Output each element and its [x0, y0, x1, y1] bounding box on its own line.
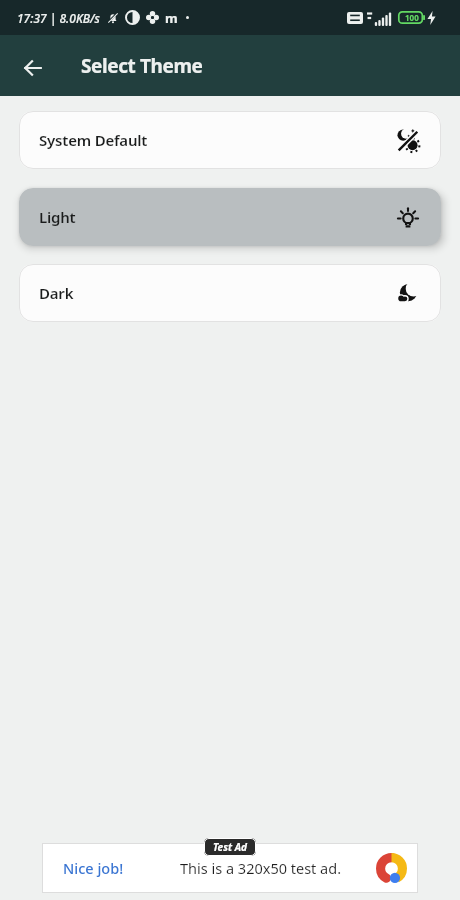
staticText: Test Ad [213, 840, 247, 854]
button[interactable]: System Default [19, 111, 441, 169]
staticText: 100 [405, 12, 419, 23]
staticText: Light [39, 207, 76, 227]
staticText: This is a 320x50 test ad. [180, 858, 342, 878]
button[interactable]: Nice job! [42, 843, 418, 893]
staticText: Dark [39, 283, 74, 303]
staticText: Nice job! [63, 858, 124, 878]
staticText: Select Theme [81, 53, 203, 79]
staticText: m [165, 9, 178, 27]
staticText: 17:37 | 8.0KB/s [17, 10, 100, 26]
button[interactable]: Dark [19, 264, 441, 322]
button[interactable] [11, 46, 55, 90]
staticText: System Default [39, 130, 148, 150]
button[interactable]: Light [19, 188, 441, 246]
